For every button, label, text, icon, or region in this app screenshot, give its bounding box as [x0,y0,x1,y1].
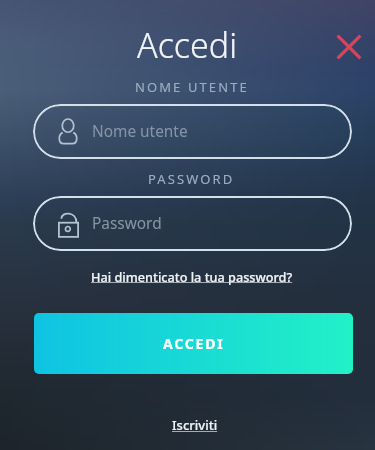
button[interactable]: ACCEDI [34,313,353,374]
button[interactable]: Iscriviti [166,413,224,437]
button[interactable]: Password [33,196,352,251]
staticText: Password [92,213,162,234]
staticText: Hai dimenticato la tua password? [91,268,293,285]
staticText: Iscriviti [172,416,218,434]
staticText: Nome utente [92,121,188,142]
button[interactable]: Chiudi [330,28,368,66]
staticText: NOME UTENTE [135,78,249,94]
button[interactable]: Nome utente [33,104,352,159]
button[interactable]: Hai dimenticato la tua password? [87,265,297,288]
staticText: PASSWORD [148,170,235,186]
staticText: Accedi [137,22,238,68]
staticText: ACCEDI [163,334,225,353]
